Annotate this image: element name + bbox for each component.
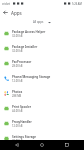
staticText: All apps [33, 20, 44, 24]
staticText: Package Access Helper [12, 30, 46, 34]
staticText: PacProcessor [12, 60, 32, 64]
staticText: Photos [12, 90, 23, 94]
staticText: 5:26 AM [72, 2, 82, 6]
staticText: Apps [11, 10, 22, 16]
staticText: 12.00 kB [12, 79, 23, 83]
staticText: ProxyHandler [12, 120, 32, 124]
button[interactable]: Phone/Messaging Storage [0, 71, 84, 86]
button[interactable]: Back [9, 140, 25, 150]
button[interactable]: ProxyHandler [0, 116, 84, 131]
button[interactable]: Back [0, 7, 11, 18]
button[interactable]: Package Installer [0, 41, 84, 56]
button[interactable]: PacProcessor [0, 56, 84, 71]
button[interactable]: Package Access Helper [0, 26, 84, 41]
staticText: 32.00 kB [12, 49, 23, 53]
button[interactable]: Settings Storage [0, 131, 84, 146]
button[interactable]: All apps [31, 20, 53, 24]
staticText: 12.00 kB [12, 124, 23, 128]
staticText: 32.00 kB [12, 34, 23, 38]
button[interactable]: Photos [0, 86, 84, 101]
button[interactable]: Home [34, 140, 50, 150]
button[interactable]: Recents [59, 140, 75, 150]
button[interactable]: Print Spooler [0, 101, 84, 116]
staticText: 28.00 kB [12, 64, 23, 68]
staticText: Package Installer [12, 45, 38, 49]
staticText: Settings Storage [12, 135, 37, 139]
staticText: 20.00 kB [12, 139, 23, 143]
staticText: cricket [2, 2, 11, 6]
staticText: Print Spooler [12, 105, 32, 109]
staticText: Phone/Messaging Storage [12, 75, 51, 79]
staticText: 44.00 kB [12, 109, 23, 113]
staticText: 288 MB [12, 94, 22, 98]
